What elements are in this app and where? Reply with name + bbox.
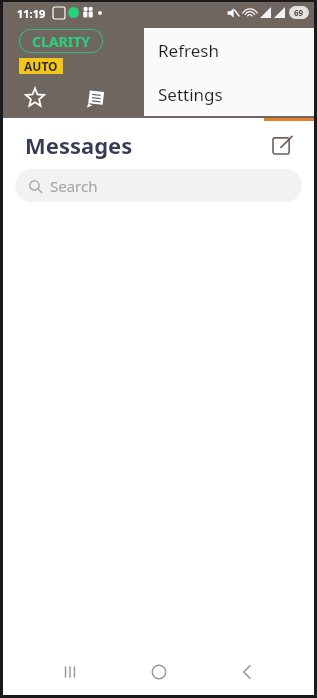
staticText: Refresh — [158, 39, 219, 62]
staticText: 11:19 — [17, 6, 46, 21]
button[interactable]: CLARITY — [19, 29, 103, 53]
button[interactable]: Settings — [144, 72, 314, 116]
button[interactable]: Search — [15, 169, 302, 202]
staticText: Messages — [25, 130, 133, 160]
staticText: CLARITY — [32, 32, 90, 51]
button[interactable]: Home — [137, 650, 181, 694]
button[interactable]: Back — [225, 650, 269, 694]
staticText: Search — [50, 176, 98, 196]
button[interactable]: Recent apps — [48, 650, 92, 694]
staticText: 69 — [294, 7, 304, 18]
staticText: Settings — [158, 83, 223, 106]
button[interactable]: Refresh — [144, 28, 314, 72]
button[interactable]: Calculator — [145, 84, 173, 112]
button[interactable]: Favorites — [21, 84, 49, 112]
button[interactable]: Notes — [83, 84, 111, 112]
staticText: AUTO — [24, 58, 58, 74]
button[interactable]: AUTO — [19, 58, 63, 74]
button[interactable]: Compose new message — [266, 129, 298, 161]
